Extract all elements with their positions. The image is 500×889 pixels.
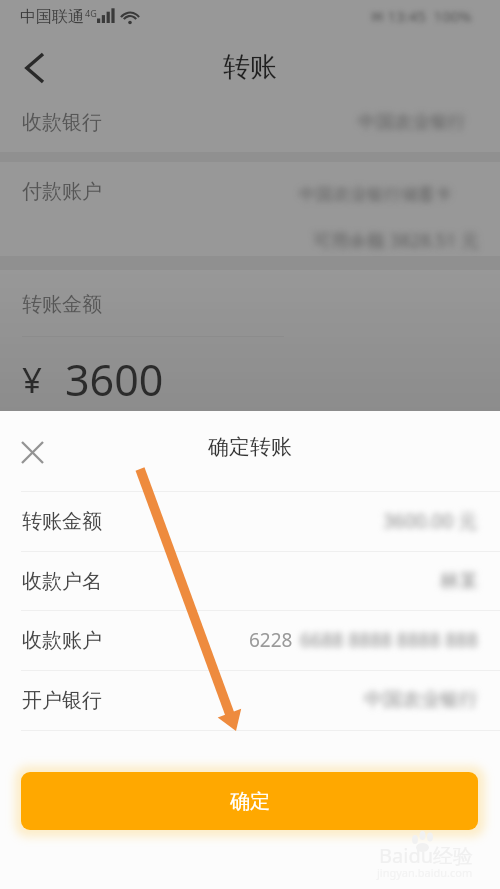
staticText: Baidu经验 — [379, 842, 474, 869]
staticText: 3600 — [65, 350, 164, 409]
staticText: jingyan.baidu.com — [377, 865, 473, 880]
staticText: 确定 — [230, 789, 270, 814]
staticText: 转账 — [0, 50, 500, 84]
staticText: 确定转账 — [0, 434, 500, 460]
staticText: 付款账户 — [22, 179, 102, 204]
button[interactable]: 开户银行 — [0, 670, 500, 730]
staticText: 收款银行 — [22, 110, 102, 135]
staticText: 开户银行 — [22, 688, 102, 713]
staticText: 转账金额 — [22, 292, 102, 317]
staticText: 中国农业银行 — [364, 688, 478, 712]
staticText: 3600.00 元 — [383, 508, 478, 534]
staticText: 中国农业银行 — [358, 111, 466, 134]
staticText: 4G — [85, 7, 97, 19]
button[interactable]: Close — [12, 432, 52, 472]
button[interactable]: 收款户名 — [0, 551, 500, 611]
staticText: 收款户名 — [22, 569, 102, 594]
staticText: 6688 8888 8888 888 — [300, 627, 478, 653]
staticText: ¥ — [22, 356, 43, 404]
staticText: ✉ 13:45 100% — [371, 6, 472, 26]
staticText: 中国农业银行储蓄卡 — [299, 184, 452, 205]
staticText: 转账金额 — [22, 509, 102, 534]
button[interactable]: 转账金额 — [0, 491, 500, 551]
staticText: 收款账户 — [22, 628, 102, 653]
staticText: 林某 — [440, 569, 478, 593]
button[interactable]: Back — [12, 46, 56, 90]
staticText: 中国联通 — [20, 7, 84, 27]
button[interactable]: 收款账户 — [0, 610, 500, 670]
staticText: 可用余额 3828.51 元 — [313, 228, 479, 253]
button[interactable]: 确定 — [21, 772, 478, 830]
staticText: 6228 — [249, 627, 293, 653]
